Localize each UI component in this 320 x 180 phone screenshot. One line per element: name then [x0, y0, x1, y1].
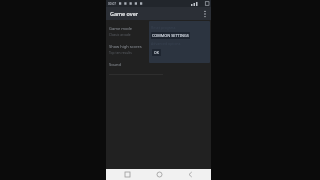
staticText: Classic arcade: [109, 32, 131, 36]
staticText: OK: [154, 50, 159, 55]
staticText: Sound: [109, 62, 122, 67]
staticText: Show high scores: [109, 44, 142, 49]
button[interactable]: Home: [149, 169, 169, 180]
button[interactable]: COMMON SETTINGS: [149, 31, 210, 40]
button[interactable]: OK: [149, 48, 210, 57]
staticText: COMMON SETTINGS: [152, 33, 189, 38]
staticText: Game mode: [109, 26, 133, 31]
button[interactable]: Back: [180, 169, 200, 180]
button[interactable]: Sound: [109, 61, 155, 68]
staticText: Top ten results: [109, 50, 132, 54]
button[interactable]: Game mode: [109, 25, 155, 37]
staticText: 00:07: [108, 2, 117, 6]
button[interactable]: More options: [199, 8, 210, 19]
button[interactable]: Show high scores: [109, 43, 155, 55]
staticText: Game over: [110, 10, 199, 17]
button[interactable]: Recents: [117, 169, 137, 180]
